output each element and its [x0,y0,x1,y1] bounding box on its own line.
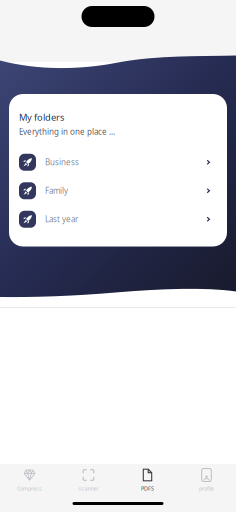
staticText: Family [45,185,68,196]
staticText: profile [199,485,214,492]
button[interactable]: scanner [59,464,118,492]
staticText: My folders [19,111,64,123]
button[interactable]: profile [177,464,236,492]
staticText: Compress [17,485,42,492]
staticText: Last year [45,214,78,225]
staticText: Business [45,157,79,168]
button[interactable]: Compress [0,464,59,492]
button[interactable]: PDFS [118,464,177,492]
staticText: PDFS [141,485,154,492]
button[interactable]: Family [19,176,217,205]
staticText: Everything in one place ... [19,126,115,137]
staticText: scanner [78,485,98,492]
button[interactable]: Business [19,148,217,176]
button[interactable]: Last year [19,205,217,233]
